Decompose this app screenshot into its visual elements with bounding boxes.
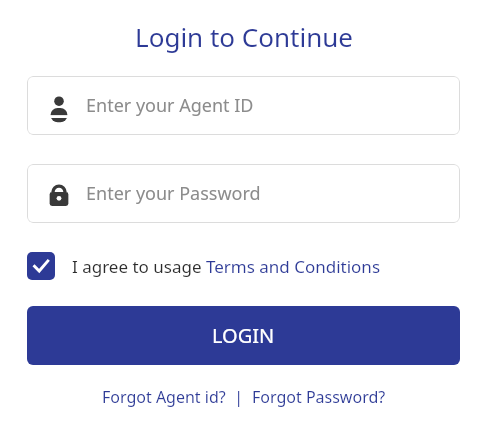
other: Agree to terms checkbox [27,252,55,280]
other: Password [47,182,71,206]
button[interactable]: Forgot Password? [252,386,386,408]
button[interactable]: Agent ID [27,76,460,135]
button[interactable]: Forgot Agent id? [102,386,226,408]
staticText: Forgot Agent id? [102,386,226,408]
staticText: Login to Continue [135,19,353,54]
button[interactable]: Agree to terms checkbox [27,252,460,280]
staticText: | [226,386,252,408]
staticText: Enter your Agent ID [86,93,254,118]
staticText: Enter your Password [86,181,261,206]
staticText: LOGIN [212,322,275,349]
button[interactable]: Password [27,164,460,223]
staticText: Forgot Password? [252,386,386,408]
other: Agent ID [47,94,71,118]
button[interactable]: LOGIN [27,306,460,365]
staticText: I agree to usage Terms and Conditions [72,255,381,278]
